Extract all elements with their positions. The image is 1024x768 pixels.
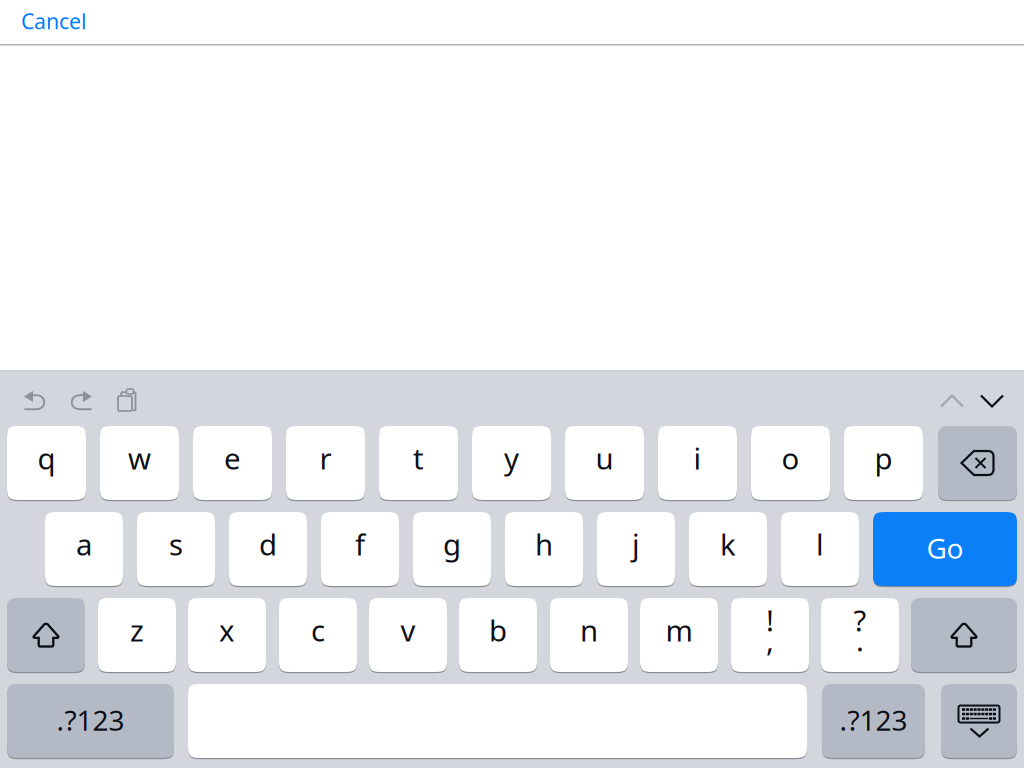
button[interactable]: Delete (938, 426, 1017, 502)
staticText: d (259, 524, 277, 563)
button[interactable]: ! (731, 598, 809, 674)
staticText: ? (853, 600, 866, 639)
staticText: q (37, 438, 55, 477)
staticText: y (504, 438, 519, 477)
button[interactable]: r (286, 426, 365, 502)
staticText: .?123 (56, 701, 124, 739)
staticText: a (76, 524, 92, 563)
staticText: g (443, 524, 461, 563)
button[interactable]: Previous field (932, 384, 972, 418)
staticText: b (489, 610, 507, 649)
staticText: i (693, 438, 701, 477)
staticText: . (856, 620, 864, 659)
staticText: k (720, 524, 736, 563)
button[interactable]: o (751, 426, 830, 502)
staticText: f (355, 524, 365, 563)
staticText: Go (926, 529, 963, 567)
button[interactable]: d (229, 512, 307, 588)
button[interactable]: z (98, 598, 176, 674)
button[interactable]: p (844, 426, 923, 502)
button[interactable]: Undo (24, 391, 62, 425)
staticText: m (665, 610, 692, 649)
staticText: z (130, 610, 144, 649)
staticText: t (413, 438, 424, 477)
button[interactable]: q (7, 426, 86, 502)
staticText: n (580, 610, 598, 649)
button[interactable]: a (45, 512, 123, 588)
button[interactable]: x (188, 598, 266, 674)
staticText: c (311, 610, 325, 649)
button[interactable]: l (781, 512, 859, 588)
button[interactable]: ? (821, 598, 899, 674)
staticText: r (319, 438, 331, 477)
button[interactable]: m (640, 598, 718, 674)
staticText: u (595, 438, 613, 477)
button[interactable]: Paste (118, 389, 144, 415)
button[interactable]: Shift (911, 598, 1017, 674)
button[interactable]: g (413, 512, 491, 588)
staticText: j (632, 524, 640, 563)
button[interactable]: .?123 (7, 684, 174, 760)
button[interactable]: w (100, 426, 179, 502)
button[interactable]: Shift (7, 598, 85, 674)
button[interactable]: e (193, 426, 272, 502)
button[interactable]: .?123 (822, 684, 925, 760)
button[interactable]: y (472, 426, 551, 502)
staticText: , (766, 620, 774, 659)
button[interactable]: Redo (71, 391, 109, 425)
button[interactable]: t (379, 426, 458, 502)
staticText: .?123 (839, 701, 907, 739)
button[interactable]: j (597, 512, 675, 588)
button[interactable]: Go (873, 512, 1017, 588)
button[interactable]: Space (188, 684, 807, 760)
button[interactable]: i (658, 426, 737, 502)
button[interactable]: u (565, 426, 644, 502)
button[interactable]: n (550, 598, 628, 674)
staticText: Cancel (21, 7, 87, 35)
button[interactable]: Hide keyboard (941, 684, 1017, 760)
staticText: o (781, 438, 799, 477)
staticText: ! (766, 600, 774, 639)
button[interactable]: b (459, 598, 537, 674)
button[interactable]: f (321, 512, 399, 588)
button[interactable]: Next field (972, 384, 1012, 418)
button[interactable]: h (505, 512, 583, 588)
button[interactable]: v (369, 598, 447, 674)
button[interactable]: k (689, 512, 767, 588)
staticText: p (874, 438, 892, 477)
staticText: l (816, 524, 824, 563)
button[interactable]: c (279, 598, 357, 674)
staticText: x (219, 610, 235, 649)
staticText: s (169, 524, 183, 563)
staticText: v (400, 610, 415, 649)
button[interactable]: Cancel (0, 0, 96, 44)
staticText: e (224, 438, 241, 477)
button[interactable]: s (137, 512, 215, 588)
staticText: h (535, 524, 553, 563)
staticText: w (128, 438, 151, 477)
